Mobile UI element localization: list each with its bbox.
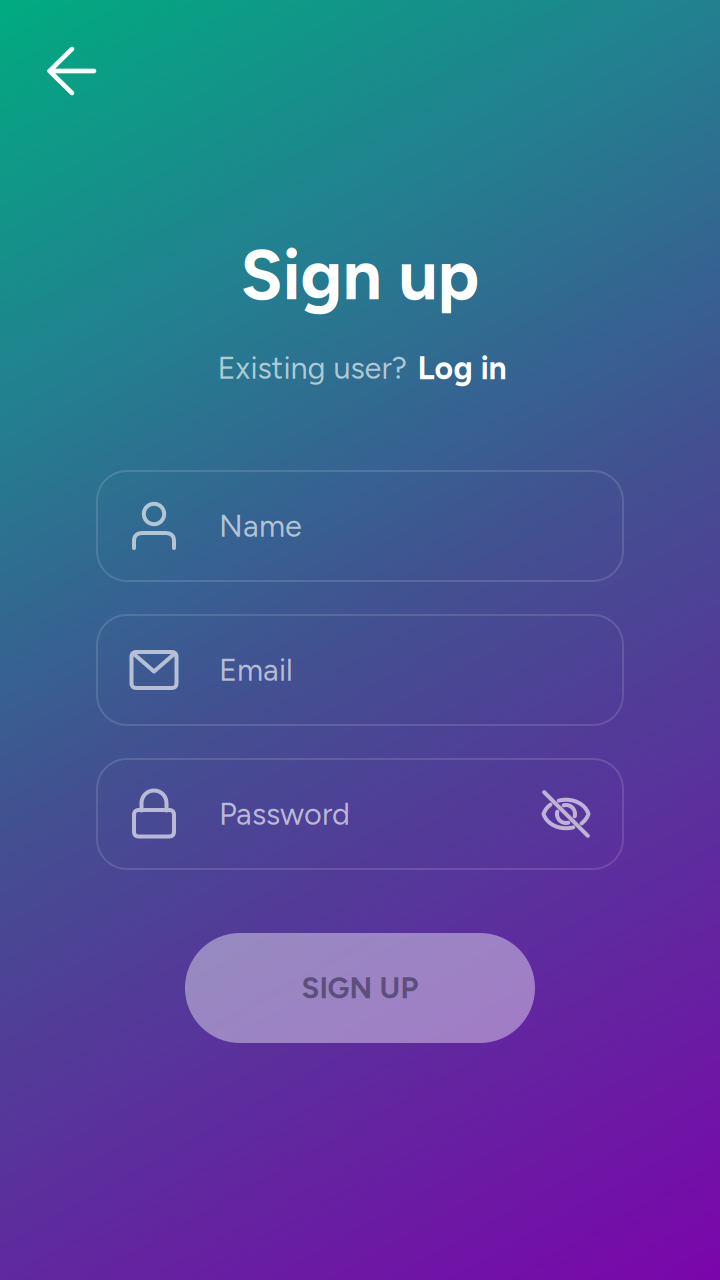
button[interactable]: Back bbox=[23, 23, 119, 119]
button[interactable]: Log in bbox=[417, 349, 506, 387]
button[interactable]: Name bbox=[97, 471, 623, 581]
staticText: Password bbox=[219, 796, 350, 832]
staticText: Name bbox=[219, 508, 302, 544]
staticText: Email bbox=[219, 652, 293, 688]
staticText: Sign up bbox=[240, 233, 479, 317]
staticText: SIGN UP bbox=[301, 970, 418, 1006]
button[interactable]: Email bbox=[97, 615, 623, 725]
button[interactable]: Password bbox=[97, 759, 623, 869]
button[interactable]: SIGN UP bbox=[185, 933, 535, 1043]
staticText: Existing user? bbox=[217, 350, 406, 386]
staticText: Log in bbox=[417, 349, 506, 387]
